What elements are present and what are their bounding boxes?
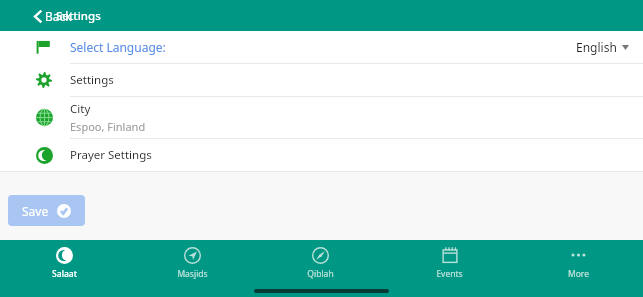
- staticText: Select Language:: [70, 39, 166, 55]
- other: Salaat: [56, 247, 73, 264]
- staticText: Settings: [70, 72, 114, 88]
- button[interactable]: Salaat: [0, 240, 128, 284]
- staticText: Masjids: [177, 268, 208, 280]
- button[interactable]: More: [514, 240, 643, 284]
- staticText: English: [576, 39, 617, 55]
- other: More: [570, 252, 587, 258]
- other: Back: [34, 10, 42, 23]
- staticText: Save: [22, 203, 49, 219]
- other: Masjids: [184, 247, 201, 264]
- staticText: Events: [436, 268, 463, 280]
- staticText: Qiblah: [307, 268, 334, 280]
- button[interactable]: City: [0, 97, 643, 138]
- staticText: Prayer Settings: [70, 147, 152, 163]
- staticText: Espoo, Finland: [70, 119, 146, 134]
- other: Qiblah: [312, 247, 329, 264]
- staticText: More: [568, 268, 589, 280]
- other: Events: [442, 247, 458, 263]
- button[interactable]: Settings: [0, 64, 643, 96]
- button[interactable]: Save: [8, 195, 85, 226]
- staticText: Back: [45, 8, 72, 24]
- button[interactable]: Select Language:: [0, 31, 643, 63]
- button[interactable]: Qiblah: [256, 240, 385, 284]
- button[interactable]: Events: [385, 240, 514, 284]
- button[interactable]: Prayer Settings: [0, 139, 643, 171]
- staticText: Salaat: [52, 268, 77, 280]
- staticText: Settings: [56, 8, 101, 24]
- button[interactable]: Back: [31, 4, 75, 28]
- button[interactable]: Masjids: [128, 240, 256, 284]
- staticText: City: [70, 101, 91, 117]
